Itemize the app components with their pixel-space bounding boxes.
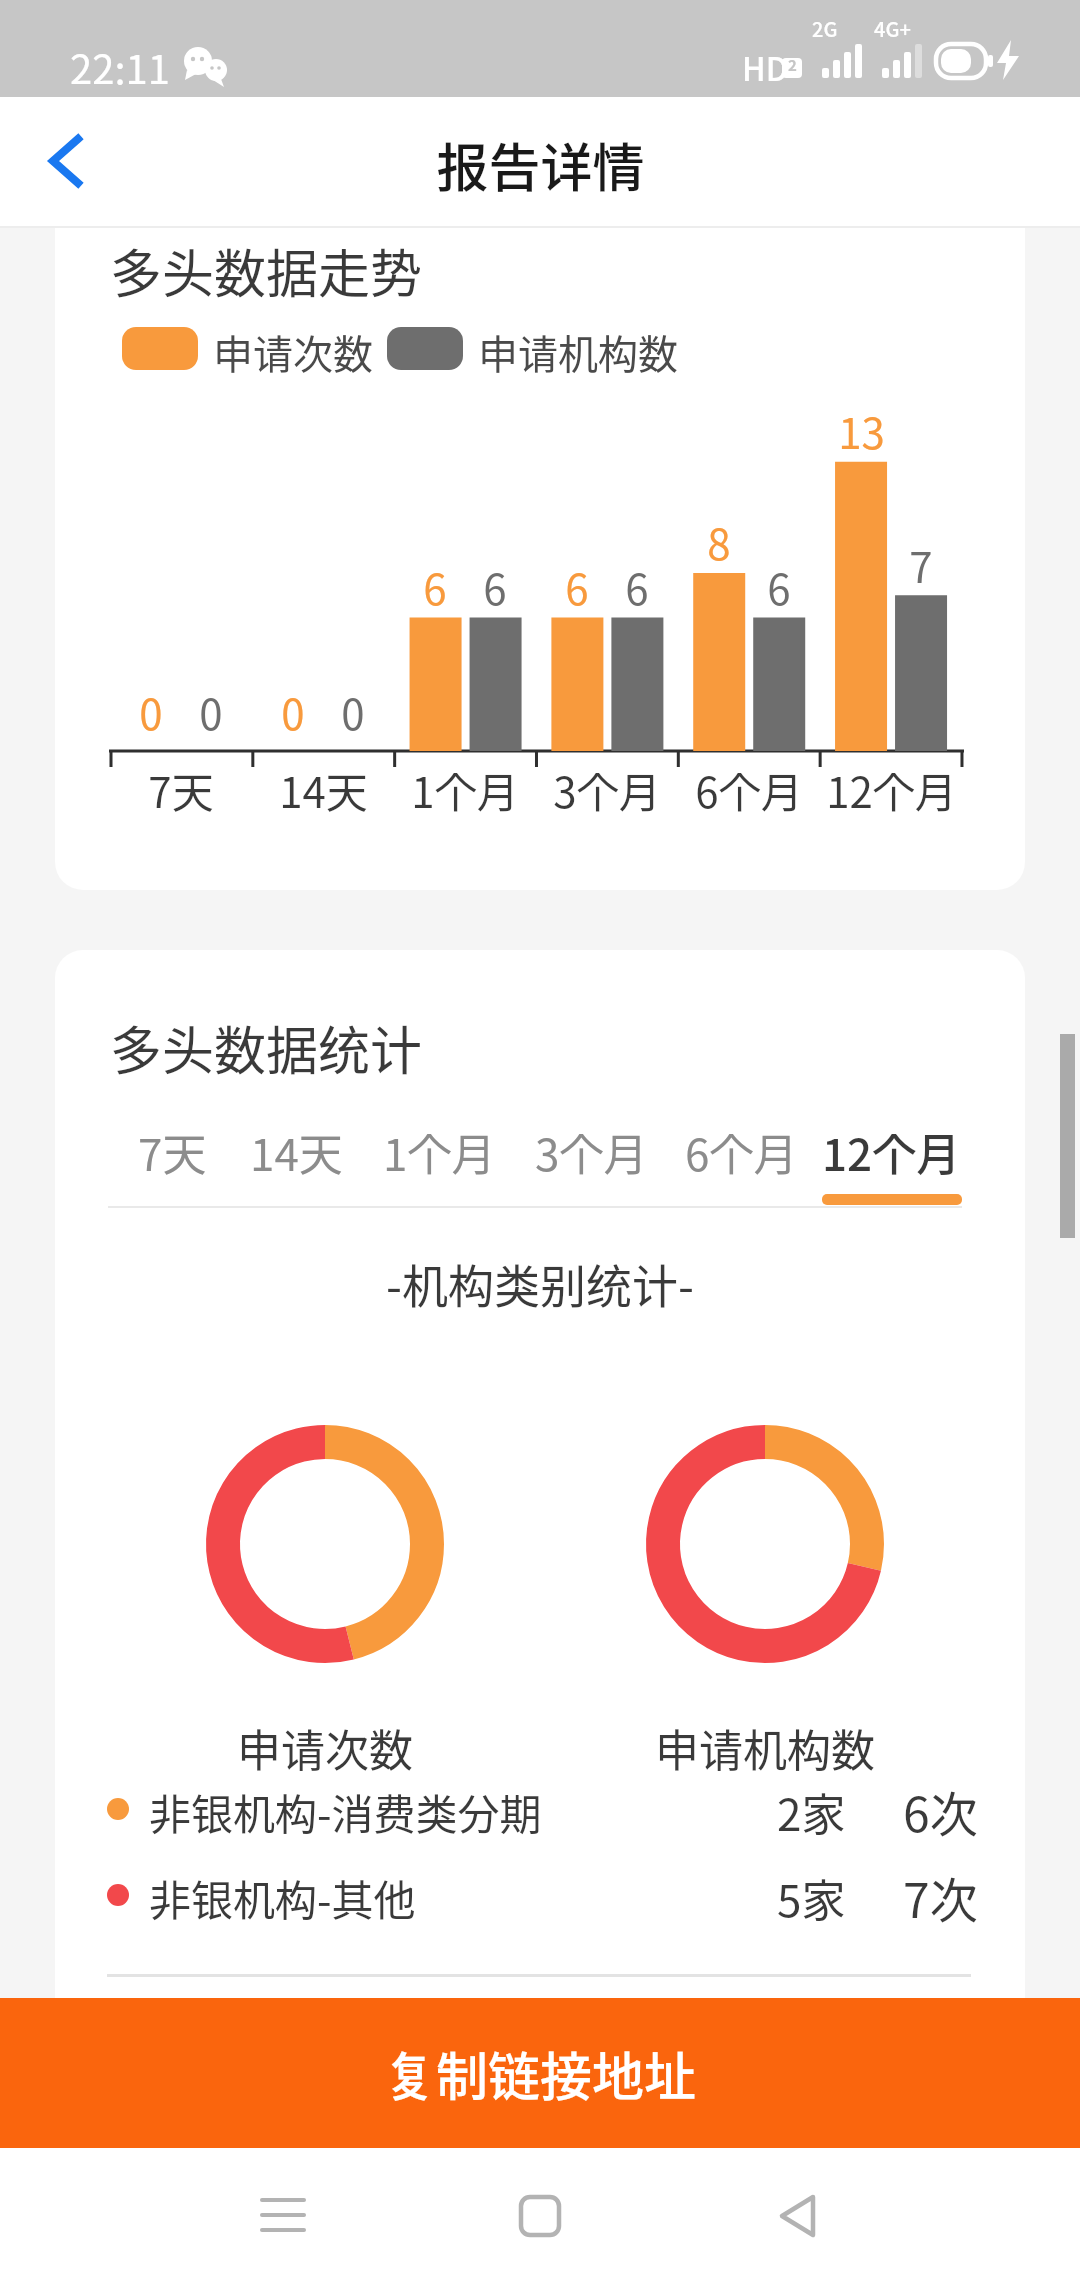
staticText: 6 (767, 556, 791, 617)
staticText: 申请次数 (237, 1716, 413, 1780)
staticText: 申请机构数 (478, 323, 678, 381)
staticText: 8 (707, 511, 731, 572)
staticText: 0 (199, 681, 223, 742)
staticText: 1个月 (411, 759, 519, 820)
staticText: 申请次数 (213, 323, 373, 381)
staticText: 4G+ (874, 14, 911, 43)
staticText: 14天 (279, 759, 368, 820)
staticText: 13 (838, 400, 885, 461)
staticText: 报告详情 (436, 127, 645, 202)
staticText: 3个月 (553, 759, 661, 820)
staticText: 复制链接地址 (384, 2036, 697, 2111)
staticText: 非银机构-消费类分期 (149, 1781, 542, 1842)
button[interactable]: 14天 (250, 1120, 343, 1180)
staticText: 12个月 (826, 759, 957, 820)
staticText: 0 (341, 681, 365, 742)
staticText: 6个月 (685, 1120, 798, 1180)
staticText: 12个月 (822, 1120, 961, 1180)
button[interactable]: 12个月 (822, 1120, 961, 1180)
staticText: 2G (812, 14, 838, 43)
staticText: -机构类别统计- (386, 1250, 694, 1317)
button[interactable]: 3个月 (535, 1120, 648, 1180)
staticText: 6 (625, 556, 649, 617)
staticText: 6 (565, 556, 589, 617)
staticText: 多头数据走势 (110, 233, 423, 308)
staticText: 非银机构-其他 (149, 1867, 416, 1928)
staticText: 7天 (148, 759, 214, 820)
staticText: 6次 (903, 1776, 978, 1846)
staticText: 3个月 (535, 1120, 648, 1180)
staticText: 0 (139, 681, 163, 742)
staticText: 14天 (250, 1120, 343, 1180)
button[interactable]: 1个月 (383, 1120, 496, 1180)
button[interactable]: 6个月 (685, 1120, 798, 1180)
button[interactable]: 7天 (138, 1120, 207, 1180)
button[interactable]: 复制链接地址 (0, 1998, 1080, 2148)
staticText: 2 (788, 58, 797, 74)
staticText: 7次 (903, 1862, 978, 1932)
staticText: 6 (423, 556, 447, 617)
staticText: 2家 (777, 1780, 846, 1844)
staticText: 申请机构数 (655, 1716, 875, 1780)
button[interactable] (747, 2166, 847, 2266)
button[interactable] (490, 2166, 590, 2266)
staticText: HD (742, 44, 789, 90)
button[interactable] (233, 2166, 333, 2266)
staticText: 1个月 (383, 1120, 496, 1180)
staticText: 0 (281, 681, 305, 742)
staticText: 多头数据统计 (110, 1010, 423, 1085)
staticText: 6 (483, 556, 507, 617)
button[interactable] (25, 117, 105, 207)
staticText: 7 (909, 534, 933, 595)
staticText: 6个月 (695, 759, 803, 820)
staticText: 22:11 (70, 38, 170, 96)
staticText: 5家 (777, 1866, 846, 1930)
staticText: 7天 (138, 1120, 207, 1180)
